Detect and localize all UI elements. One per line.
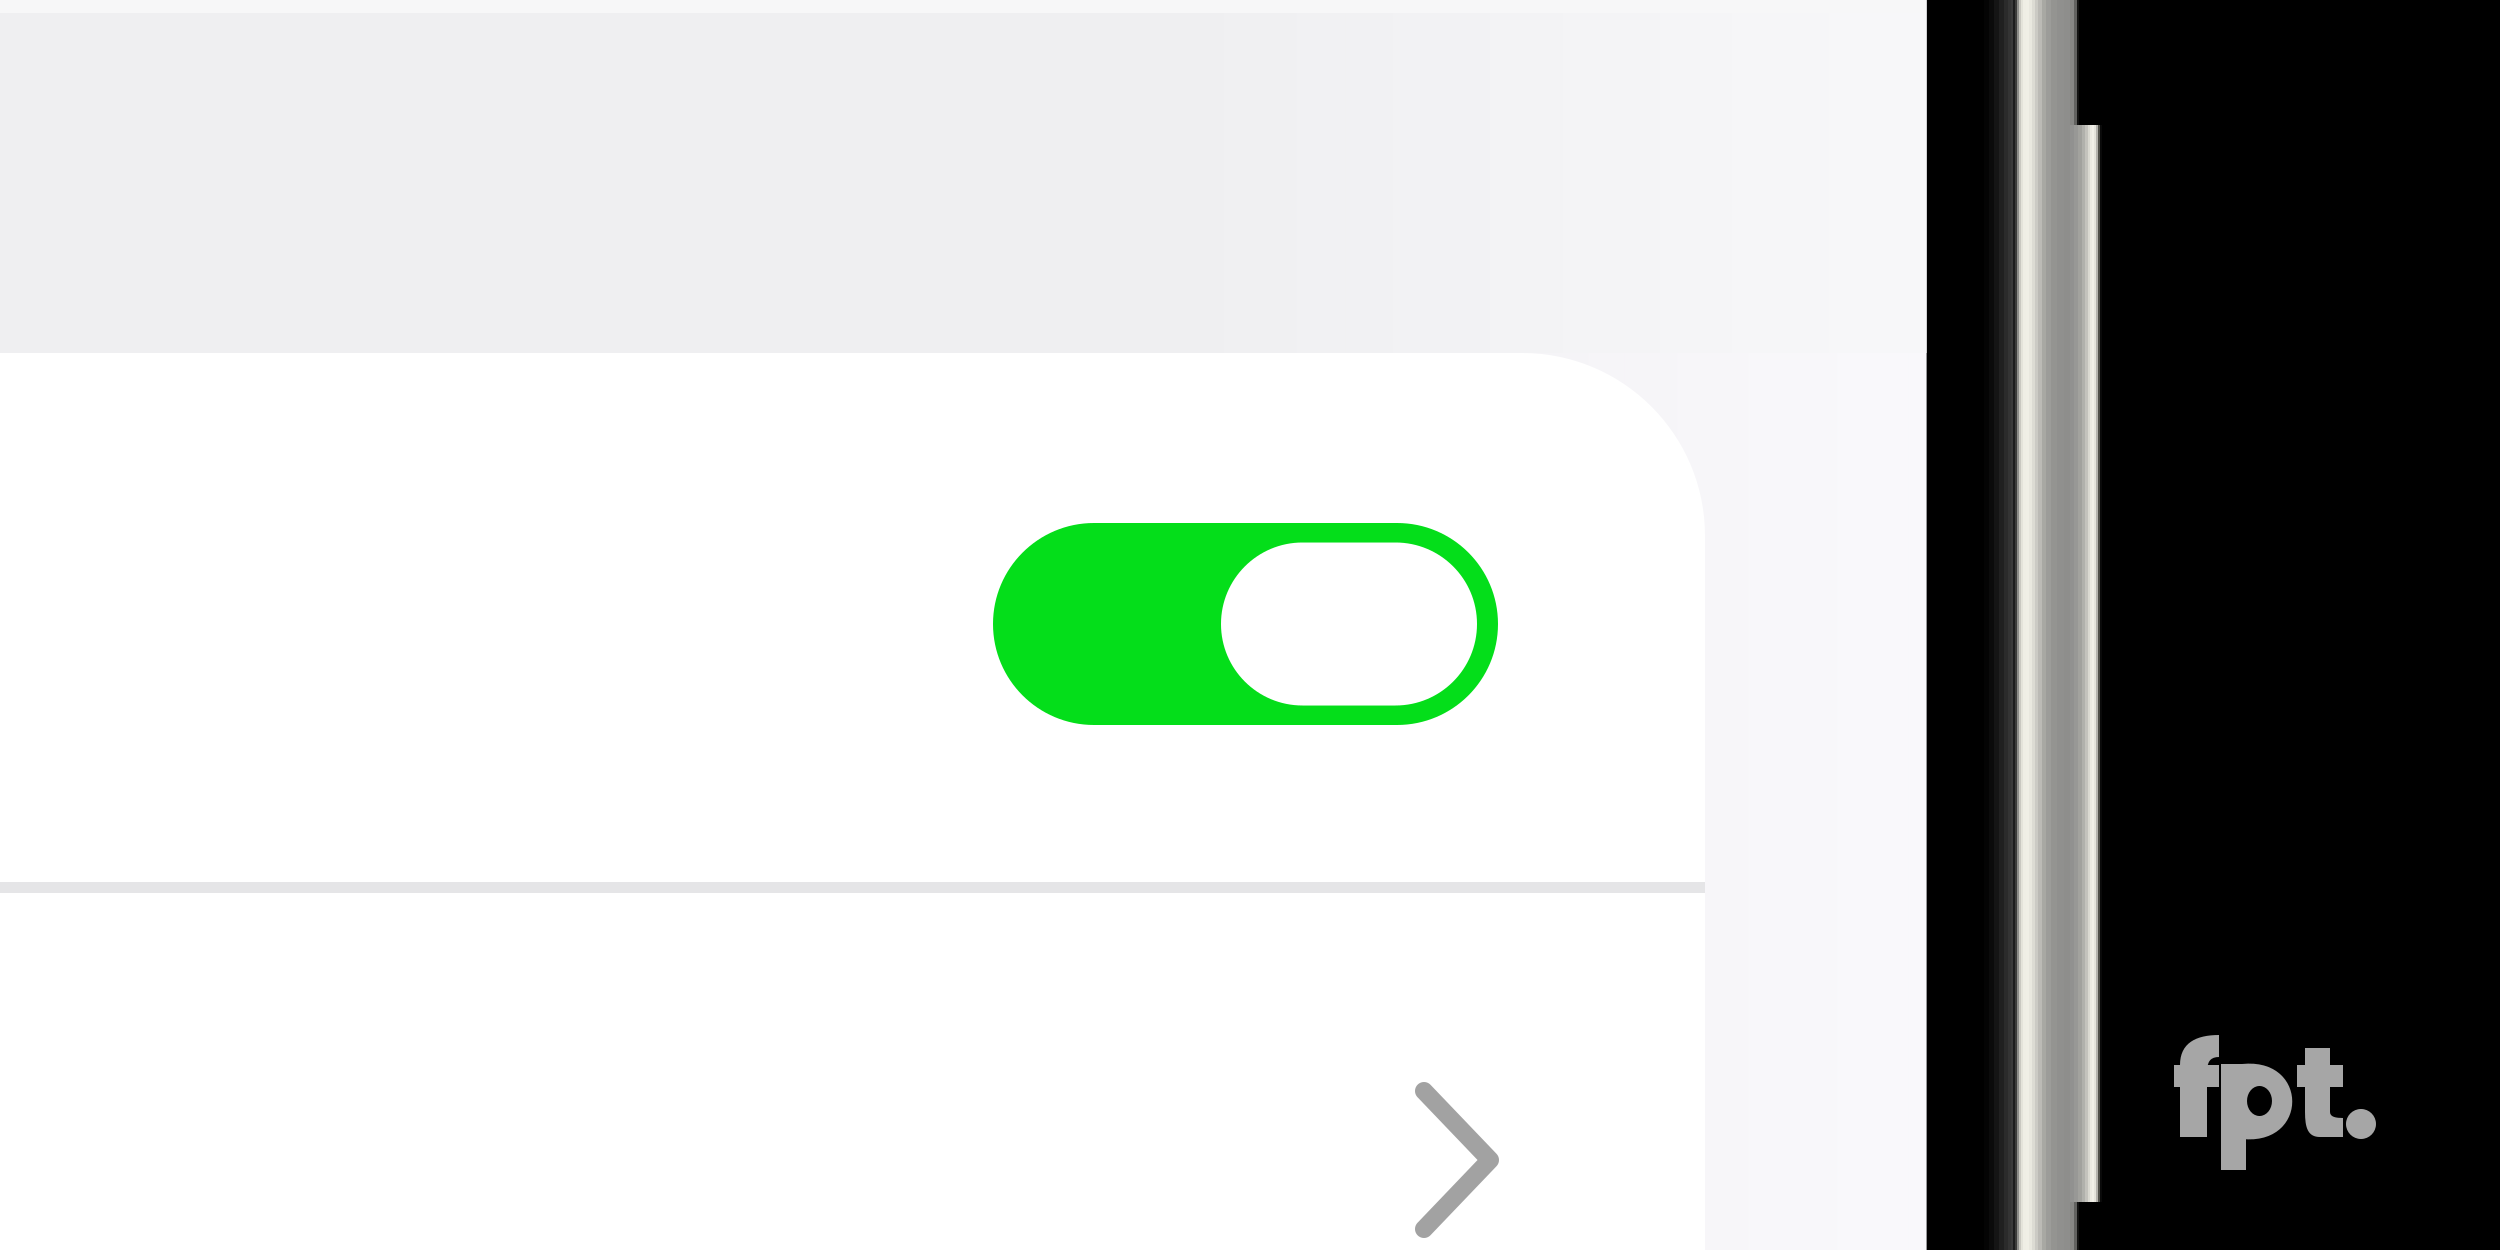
button[interactable]: Toggle, on bbox=[993, 523, 1498, 725]
button[interactable]: Open bbox=[0, 893, 1705, 1250]
